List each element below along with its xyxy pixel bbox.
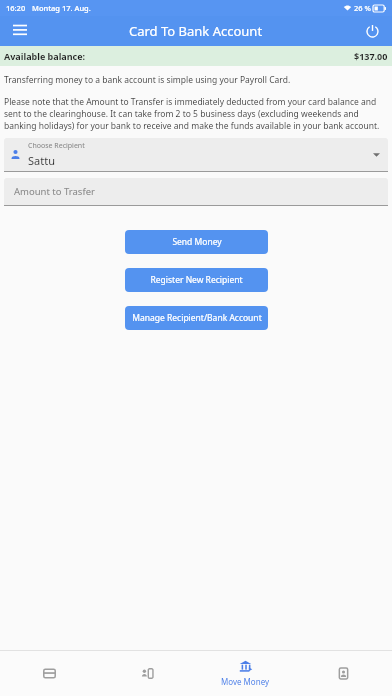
staticText: Please note that the Amount to Transfer … [4, 96, 388, 132]
button[interactable]: Register New Recipient [125, 268, 268, 292]
button[interactable]: Card [0, 651, 98, 696]
button[interactable]: Logout [358, 17, 386, 45]
staticText: Send Money [172, 236, 222, 248]
button[interactable]: Amount to Trasfer [4, 178, 388, 206]
staticText: Amount to Trasfer [14, 185, 95, 198]
staticText: Sattu [28, 153, 55, 168]
staticText: Card To Bank Account [129, 22, 263, 40]
staticText: Montag 17. Aug. [32, 3, 91, 13]
button[interactable]: Profile [294, 651, 392, 696]
staticText: Available balance: [4, 50, 86, 62]
staticText: 16:20 [6, 3, 26, 13]
staticText: Register New Recipient [150, 274, 243, 286]
staticText: Choose Recipient [28, 141, 85, 151]
button[interactable]: Menu [4, 16, 36, 46]
staticText: Move Money [221, 676, 270, 687]
staticText: Transferring money to a bank account is … [4, 74, 291, 86]
button[interactable]: Move Money [196, 651, 294, 696]
button[interactable]: Choose Recipient [4, 138, 388, 172]
button[interactable]: Send Money [125, 230, 268, 254]
button[interactable]: Pay Contacts [98, 651, 196, 696]
button[interactable]: Manage Recipient/Bank Account [125, 306, 268, 330]
staticText: $137.00 [354, 50, 388, 62]
staticText: Manage Recipient/Bank Account [132, 312, 262, 324]
staticText: 26 % [354, 3, 371, 13]
